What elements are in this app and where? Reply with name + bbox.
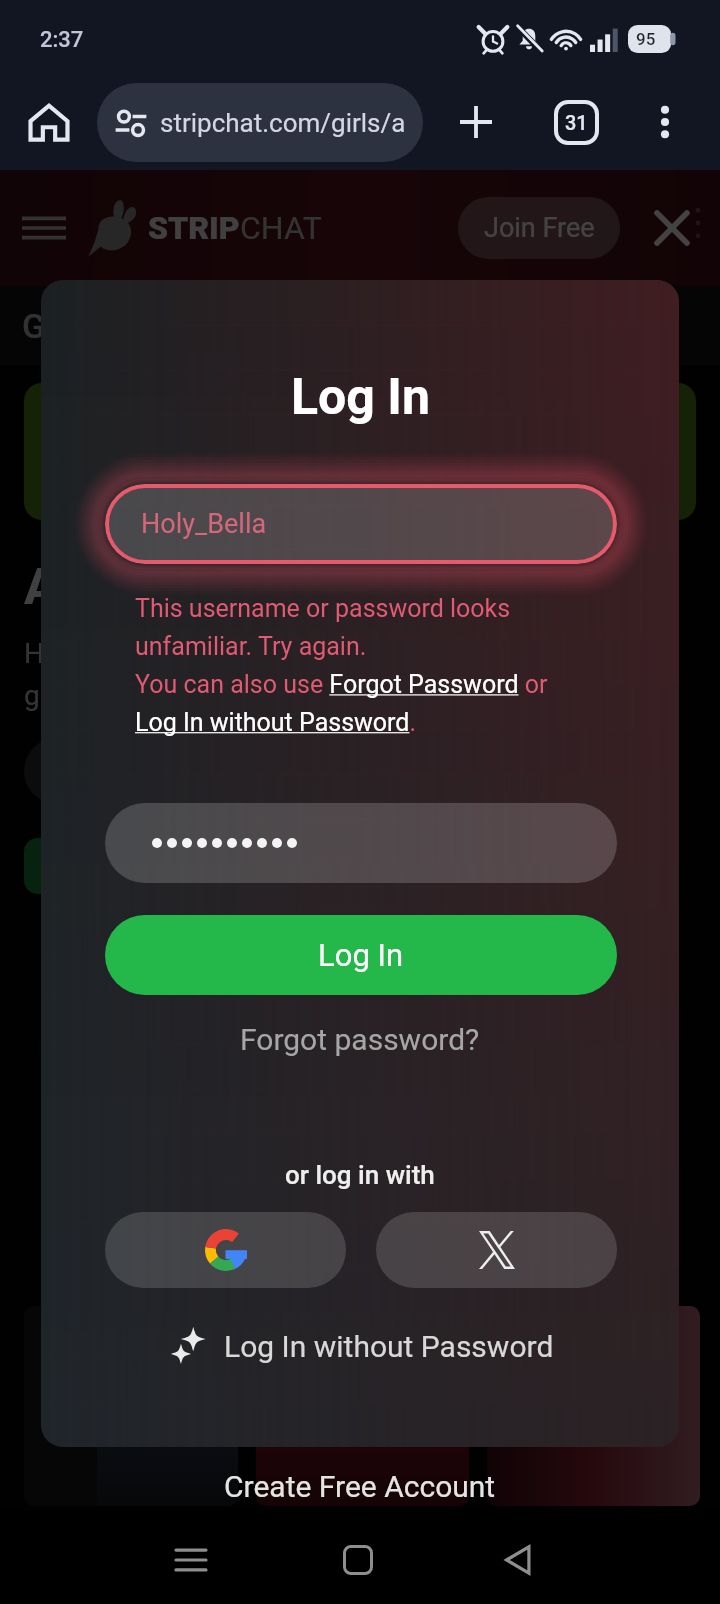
button[interactable]: Log In xyxy=(105,915,617,995)
button[interactable]: Log in with X xyxy=(376,1212,617,1288)
button[interactable] xyxy=(105,803,617,883)
staticText: Holy_Bella xyxy=(141,508,267,540)
button[interactable]: Close xyxy=(646,202,698,254)
staticText: Join Free xyxy=(484,212,595,244)
staticText: 95 xyxy=(636,29,656,49)
staticText: Here you can find the best asian cam gir… xyxy=(24,637,484,712)
staticText: 2:37 xyxy=(40,27,84,53)
staticText: Create Free Account xyxy=(224,1469,496,1504)
staticText: Log In without Password xyxy=(224,1329,554,1364)
staticText: or log in with xyxy=(285,1160,435,1190)
staticText: CHAT xyxy=(240,209,322,247)
button[interactable]: New tab xyxy=(445,91,507,153)
button[interactable]: Home xyxy=(324,1526,392,1594)
button[interactable]: Join Free xyxy=(458,197,620,259)
button[interactable]: Recent apps xyxy=(157,1526,225,1594)
button[interactable]: stripchat.com/girls/a xyxy=(97,83,423,162)
button[interactable]: Tabs xyxy=(545,91,607,153)
button[interactable]: Forgot password? xyxy=(224,1016,496,1063)
button[interactable]: Log in with Google xyxy=(105,1212,346,1288)
button[interactable]: Menu xyxy=(17,201,71,255)
button[interactable]: Home xyxy=(20,93,78,151)
button[interactable]: Log In without Password xyxy=(156,1318,564,1374)
staticText: Log In xyxy=(291,368,430,427)
button[interactable]: More options xyxy=(637,94,693,150)
staticText: This username or password looks unfamili… xyxy=(135,594,635,737)
staticText: stripchat.com/girls/a xyxy=(160,108,406,138)
staticText: Log In xyxy=(318,937,404,973)
staticText: Asian Cam Girls xyxy=(24,558,384,617)
staticText: STRIP xyxy=(148,209,240,247)
staticText: Forgot password? xyxy=(240,1022,480,1057)
button[interactable]: Back xyxy=(484,1526,552,1594)
staticText: Girls xyxy=(22,306,93,346)
button[interactable]: Holy_Bella xyxy=(105,484,617,564)
button[interactable]: Create Free Account xyxy=(0,1468,720,1504)
staticText: 31 xyxy=(565,111,588,134)
